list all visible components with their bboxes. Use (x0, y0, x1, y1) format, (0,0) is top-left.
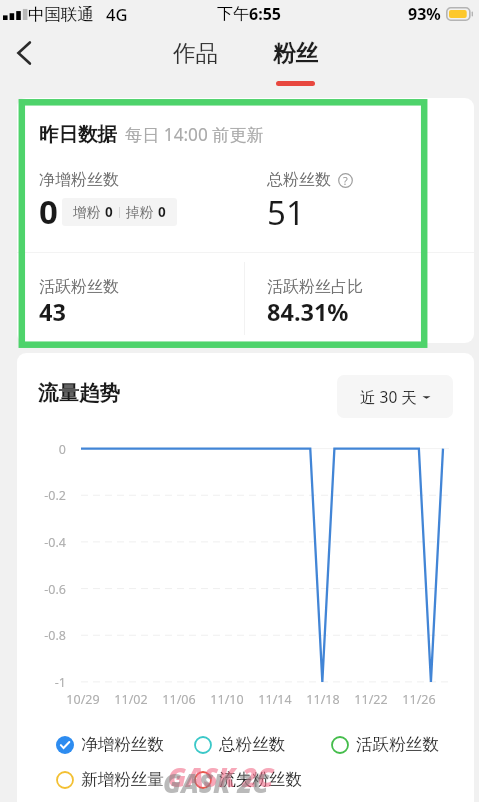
staticText: 粉丝 (273, 39, 318, 67)
staticText: 11/02 (114, 691, 148, 708)
staticText: 掉粉 (126, 204, 153, 221)
button[interactable]: 流失粉丝数 (194, 769, 302, 790)
staticText: 近 30 天 (360, 386, 417, 407)
staticText: 0 (58, 441, 66, 458)
staticText: 作品 (173, 39, 218, 67)
staticText: 6:55 (249, 3, 281, 25)
staticText: 11/26 (402, 691, 436, 708)
button[interactable]: 作品 (160, 39, 230, 79)
button[interactable]: 近 30 天 (337, 375, 453, 418)
staticText: 11/14 (258, 691, 292, 708)
staticText: GASK 2C (163, 765, 269, 800)
staticText: 净增粉丝数 (39, 170, 119, 190)
staticText: 0 (39, 189, 58, 234)
staticText: 0 (158, 203, 166, 221)
staticText: 11/18 (306, 691, 340, 708)
staticText: 活跃粉丝数 (356, 734, 439, 755)
staticText: -0.4 (44, 534, 66, 551)
staticText: 下午 (217, 4, 249, 24)
staticText: 4G (106, 3, 128, 25)
staticText: 新增粉丝量 (81, 769, 164, 790)
staticText: ? (343, 173, 348, 188)
staticText: 51 (267, 190, 305, 235)
staticText: 昨日数据 (39, 122, 117, 147)
staticText: 活跃粉丝占比 (267, 277, 363, 297)
button[interactable]: 总粉丝数 (194, 734, 286, 755)
other: Help (338, 173, 353, 188)
staticText: 活跃粉丝数 (39, 277, 119, 297)
staticText: -0.2 (44, 487, 66, 504)
staticText: 总粉丝数 (267, 170, 331, 190)
staticText: 11/22 (354, 691, 388, 708)
staticText: 流失粉丝数 (219, 769, 302, 790)
staticText: -0.6 (44, 581, 66, 598)
button[interactable]: 净增粉丝数 (56, 734, 164, 755)
staticText: 净增粉丝数 (81, 734, 164, 755)
staticText: 84.31% (267, 296, 349, 328)
staticText: 43 (39, 296, 66, 328)
staticText: 每日 14:00 前更新 (125, 123, 264, 146)
staticText: -0.8 (44, 627, 66, 644)
staticText: 93% (408, 3, 441, 25)
staticText: -1 (54, 674, 66, 691)
staticText: GASK 2C (168, 759, 274, 794)
button[interactable]: 新增粉丝量 (56, 769, 164, 790)
staticText: 增粉 (73, 204, 100, 221)
button[interactable]: Back (2, 31, 46, 75)
button[interactable]: 活跃粉丝数 (331, 734, 439, 755)
staticText: 中国联通 (28, 4, 94, 25)
staticText: 11/06 (162, 691, 196, 708)
staticText: 0 (105, 203, 113, 221)
staticText: 总粉丝数 (219, 734, 286, 755)
staticText: 流量趋势 (38, 380, 120, 406)
button[interactable]: 粉丝 (260, 39, 330, 91)
staticText: 10/29 (66, 691, 100, 708)
staticText: 11/10 (210, 691, 244, 708)
